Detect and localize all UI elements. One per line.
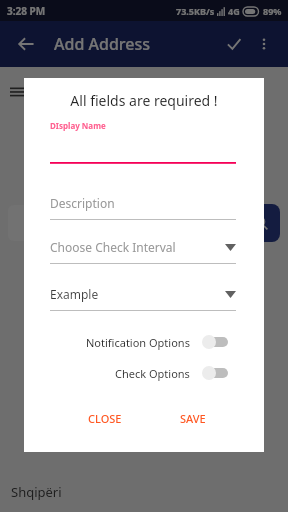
button[interactable]: SAVE bbox=[180, 411, 206, 426]
staticText: All fields are required ! bbox=[24, 91, 264, 110]
staticText: Notification Options bbox=[86, 335, 190, 350]
staticText: Choose Check Interval bbox=[50, 239, 176, 255]
button[interactable] bbox=[50, 131, 236, 164]
button[interactable] bbox=[8, 205, 44, 241]
button[interactable]: Check Options bbox=[50, 362, 236, 384]
staticText: Add Address bbox=[54, 33, 150, 55]
staticText: Check Options bbox=[115, 366, 190, 381]
button[interactable]: Search bbox=[242, 204, 280, 242]
staticText: 4G bbox=[228, 5, 240, 17]
button[interactable]: CLOSE bbox=[88, 411, 122, 426]
staticText: 73.5KB/s bbox=[176, 5, 215, 17]
button[interactable]: Confirm bbox=[218, 28, 250, 60]
button[interactable]: More options bbox=[250, 30, 278, 58]
staticText: CLOSE bbox=[88, 411, 122, 426]
staticText: DIsplay Name bbox=[50, 120, 106, 131]
staticText: 89% bbox=[263, 5, 282, 17]
button[interactable]: Back bbox=[10, 28, 42, 60]
button[interactable]: Choose Check Interval bbox=[50, 236, 236, 264]
staticText: Example bbox=[50, 286, 99, 302]
button[interactable]: Description bbox=[50, 192, 236, 220]
staticText: Shqipëri bbox=[11, 483, 62, 501]
staticText: Description bbox=[50, 195, 115, 211]
button[interactable]: Example bbox=[50, 283, 236, 311]
staticText: SAVE bbox=[180, 411, 206, 426]
staticText: 3:28 PM bbox=[7, 4, 46, 18]
button[interactable]: Notification Options bbox=[50, 331, 236, 353]
